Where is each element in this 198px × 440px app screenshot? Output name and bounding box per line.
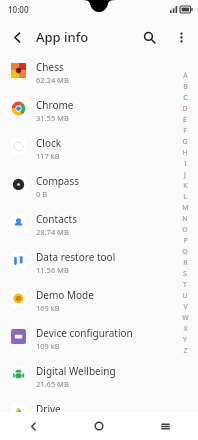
staticText: S — [183, 269, 187, 279]
staticText: Q — [182, 247, 188, 257]
button[interactable]: Home — [66, 412, 132, 440]
staticText: L — [183, 192, 187, 202]
staticText: W — [182, 313, 189, 323]
staticText: R — [183, 258, 188, 268]
staticText: M — [182, 203, 189, 213]
staticText: Chrome — [36, 98, 74, 112]
staticText: Digital Wellbeing — [36, 364, 116, 378]
button[interactable]: Search — [132, 20, 166, 54]
staticText: 21.65 MB — [36, 379, 69, 389]
button[interactable]: Drive — [0, 398, 198, 428]
staticText: Chess — [36, 60, 64, 74]
button[interactable]: Device configuration — [0, 322, 198, 360]
staticText: T — [183, 280, 187, 290]
staticText: Y — [183, 335, 187, 345]
staticText: 0 B — [36, 189, 48, 199]
staticText: Contacts — [36, 212, 77, 226]
staticText: H — [182, 148, 188, 158]
staticText: 31.55 MB — [36, 113, 69, 123]
staticText: P — [183, 236, 188, 246]
button[interactable]: Digital Wellbeing — [0, 360, 198, 398]
staticText: E — [183, 115, 187, 125]
staticText: D — [182, 104, 188, 114]
staticText: J — [184, 170, 186, 180]
button[interactable]: Recent apps — [132, 412, 198, 440]
button[interactable]: Back — [0, 412, 66, 440]
button[interactable]: Alphabet index — [178, 70, 192, 356]
staticText: 62.24 MB — [36, 75, 69, 85]
staticText: 28.74 MB — [36, 227, 69, 237]
button[interactable]: Contacts — [0, 208, 198, 246]
staticText: App info — [36, 28, 132, 46]
staticText: N — [182, 214, 188, 224]
staticText: 10:00 — [8, 4, 29, 15]
staticText: F — [183, 126, 187, 136]
staticText: Data restore tool — [36, 250, 116, 264]
staticText: G — [182, 137, 188, 147]
button[interactable]: Chrome — [0, 94, 198, 132]
staticText: I — [184, 159, 187, 169]
staticText: B — [183, 82, 188, 92]
staticText: O — [182, 225, 188, 235]
staticText: Drive — [36, 402, 61, 416]
button[interactable]: Back — [0, 20, 34, 54]
staticText: V — [183, 302, 188, 312]
button[interactable]: Compass — [0, 170, 198, 208]
staticText: 117 kB — [36, 151, 60, 161]
button[interactable]: Clock — [0, 132, 198, 170]
staticText: K — [183, 181, 188, 191]
staticText: C — [183, 93, 188, 103]
staticText: Compass — [36, 174, 80, 188]
button[interactable]: More options — [166, 22, 196, 52]
button[interactable]: Chess — [0, 56, 198, 94]
staticText: Z — [183, 346, 188, 356]
staticText: X — [183, 324, 188, 334]
staticText: 11.56 MB — [36, 265, 69, 275]
staticText: Clock — [36, 136, 62, 150]
staticText: 109 kB — [36, 341, 60, 351]
staticText: Demo Mode — [36, 288, 94, 302]
button[interactable]: Demo Mode — [0, 284, 198, 322]
staticText: U — [182, 291, 188, 301]
staticText: Device configuration — [36, 326, 133, 340]
button[interactable]: Data restore tool — [0, 246, 198, 284]
staticText: 169 kB — [36, 303, 60, 313]
staticText: A — [183, 71, 188, 81]
